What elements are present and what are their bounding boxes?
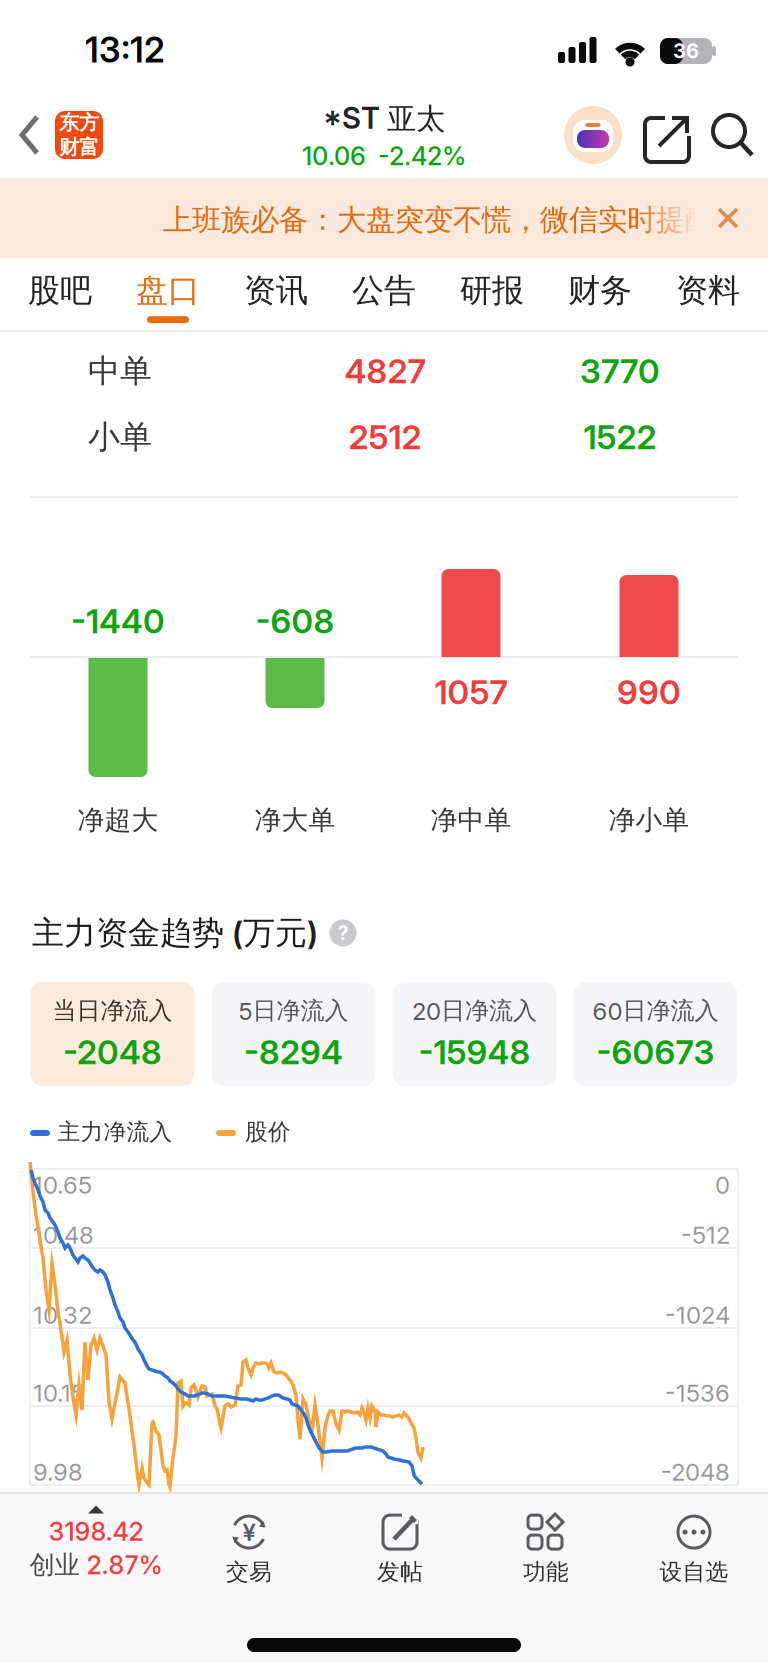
- staticText: 研报: [460, 271, 524, 310]
- staticText: 股吧: [28, 271, 92, 310]
- staticText: 净小单: [608, 804, 689, 836]
- staticText: 当日净流入: [52, 996, 172, 1026]
- staticText: 发帖: [377, 1558, 423, 1586]
- staticText: 小单: [88, 417, 152, 457]
- staticText: -512: [681, 1221, 730, 1249]
- button[interactable]: 研报: [460, 271, 524, 323]
- button[interactable]: 5日净流入: [211, 982, 375, 1086]
- button[interactable]: 资料: [676, 271, 740, 323]
- button[interactable]: 盘口: [136, 271, 200, 323]
- staticText: 13:12: [85, 30, 165, 70]
- staticText: -2.42%: [378, 141, 466, 171]
- staticText: 功能: [523, 1558, 569, 1586]
- staticText: 10.15: [33, 1379, 85, 1407]
- button[interactable]: 财务: [568, 271, 632, 323]
- staticText: 60日净流入: [592, 996, 718, 1026]
- button[interactable]: 当日净流入: [30, 982, 194, 1086]
- staticText: 上班族必备：大盘突变不慌，微信实时提醒: [163, 202, 714, 238]
- staticText: 净超大: [77, 804, 158, 836]
- staticText: 10.06: [302, 141, 366, 171]
- staticText: 2512: [348, 417, 421, 457]
- staticText: 5日净流入: [238, 996, 348, 1026]
- staticText: 主力净流入: [57, 1118, 172, 1146]
- button[interactable]: 60日净流入: [573, 982, 737, 1086]
- staticText: -60673: [596, 1033, 714, 1072]
- button[interactable]: 资讯: [244, 271, 308, 323]
- staticText: 财务: [568, 271, 632, 310]
- staticText: 10.32: [33, 1301, 92, 1329]
- button[interactable]: Search: [706, 110, 758, 162]
- staticText: 9.98: [33, 1458, 83, 1486]
- staticText: 股价: [245, 1118, 291, 1146]
- button[interactable]: 东方财富: [55, 111, 103, 159]
- staticText: 2.87%: [86, 1550, 162, 1580]
- staticText: 财富: [59, 135, 99, 160]
- button[interactable]: Close: [710, 200, 746, 236]
- staticText: -608: [255, 601, 334, 641]
- button[interactable]: 创业板指数: [11, 1497, 181, 1589]
- staticText: 净大单: [254, 804, 335, 836]
- staticText: 东方: [59, 110, 99, 135]
- staticText: 交易: [226, 1558, 272, 1586]
- staticText: 1522: [583, 417, 656, 457]
- staticText: -15948: [418, 1033, 530, 1072]
- staticText: ¥: [242, 1518, 255, 1546]
- staticText: -8294: [244, 1033, 343, 1072]
- staticText: -2048: [63, 1033, 162, 1072]
- staticText: ?: [337, 921, 348, 945]
- button[interactable]: 发帖: [335, 1503, 465, 1595]
- staticText: 3198.42: [48, 1516, 143, 1546]
- staticText: 净中单: [430, 804, 511, 836]
- button[interactable]: 交易: [184, 1503, 314, 1595]
- button[interactable]: 智能助手: [564, 106, 622, 164]
- staticText: 资料: [676, 271, 740, 310]
- staticText: 990: [617, 672, 681, 712]
- staticText: 中单: [88, 351, 152, 391]
- staticText: 公告: [352, 271, 416, 310]
- staticText: 10.48: [33, 1221, 94, 1249]
- button[interactable]: Back: [7, 113, 51, 157]
- staticText: 36: [673, 39, 699, 63]
- staticText: 资讯: [244, 271, 308, 310]
- button[interactable]: 帮助: [327, 917, 359, 949]
- staticText: 主力资金趋势 (万元): [32, 913, 318, 953]
- button[interactable]: 公告: [352, 271, 416, 323]
- staticText: 20日净流入: [412, 996, 537, 1026]
- staticText: 创业: [29, 1549, 79, 1580]
- staticText: -2048: [661, 1458, 730, 1486]
- button[interactable]: Share: [643, 112, 695, 164]
- staticText: 0: [715, 1171, 730, 1199]
- staticText: -1024: [665, 1301, 730, 1329]
- staticText: 3770: [580, 351, 660, 391]
- button[interactable]: 股吧: [28, 271, 92, 323]
- staticText: 1057: [434, 672, 507, 712]
- staticText: 10.65: [33, 1171, 92, 1199]
- button[interactable]: 功能: [481, 1503, 611, 1595]
- staticText: -1536: [665, 1379, 730, 1407]
- button[interactable]: 20日净流入: [392, 982, 556, 1086]
- staticText: *ST 亚太: [323, 101, 445, 137]
- button[interactable]: 广告横幅: [0, 178, 768, 258]
- staticText: 盘口: [136, 271, 200, 310]
- staticText: 4827: [344, 351, 425, 391]
- button[interactable]: 设自选: [629, 1503, 759, 1595]
- staticText: 设自选: [659, 1558, 728, 1586]
- staticText: -1440: [71, 601, 165, 641]
